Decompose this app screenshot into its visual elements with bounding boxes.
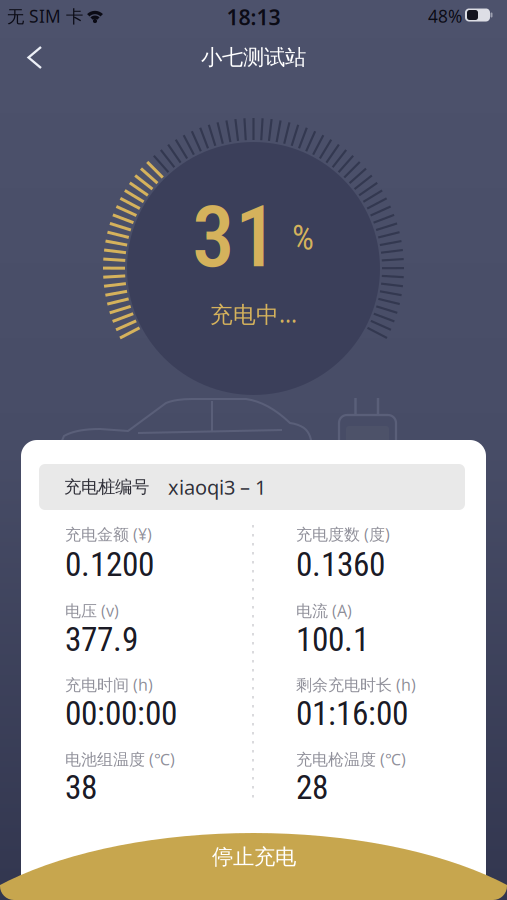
staticText: 00:00:00 [65, 694, 177, 733]
staticText: 100.1 [296, 620, 369, 659]
staticText: 充电金额 (¥) [65, 523, 152, 545]
staticText: 充电枪温度 (℃) [296, 748, 406, 770]
staticText: 31 [192, 187, 278, 287]
staticText: 48% [428, 4, 462, 27]
staticText: 01:16:00 [296, 694, 408, 733]
staticText: 停止充电 [212, 844, 296, 870]
staticText: 剩余充电时长 (h) [296, 674, 416, 695]
staticText: 电流 (A) [296, 600, 352, 621]
staticText: 充电度数 (度) [296, 523, 390, 545]
staticText: 充电时间 (h) [65, 674, 153, 695]
staticText: 0.1360 [296, 545, 385, 584]
staticText: 18:13 [226, 3, 280, 31]
staticText: 电压 (v) [65, 600, 119, 621]
staticText: 电池组温度 (℃) [65, 748, 175, 770]
staticText: 无 SIM 卡 [7, 4, 83, 27]
staticText: 377.9 [65, 620, 138, 659]
staticText: 充电桩编号 [64, 476, 149, 498]
button[interactable]: 停止充电 [0, 820, 507, 900]
staticText: xiaoqi3 – 1 [168, 474, 266, 500]
staticText: 充电中... [210, 299, 297, 329]
staticText: 0.1200 [65, 545, 154, 584]
staticText: % [292, 218, 314, 258]
staticText: 28 [296, 768, 328, 807]
staticText: 小七测试站 [201, 44, 306, 71]
button[interactable]: Back [11, 36, 55, 80]
staticText: 38 [65, 768, 97, 807]
